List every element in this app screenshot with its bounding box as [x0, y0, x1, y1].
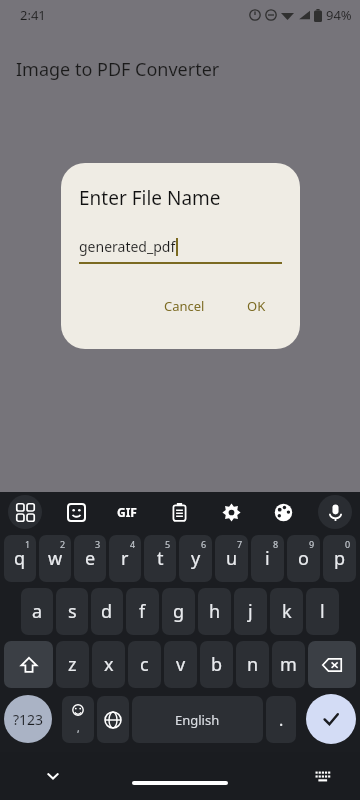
staticText: l — [320, 599, 325, 624]
button[interactable]: Emoji and comma — [62, 696, 94, 743]
staticText: generated_pdf — [79, 237, 176, 256]
staticText: e — [85, 546, 96, 571]
staticText: k — [282, 599, 292, 624]
button[interactable]: Clipboard — [162, 495, 196, 529]
staticText: b — [211, 652, 223, 677]
staticText: v — [176, 652, 186, 677]
staticText: ?123 — [13, 710, 44, 729]
staticText: d — [101, 599, 113, 624]
button[interactable]: p — [323, 535, 356, 582]
staticText: English — [175, 711, 220, 729]
button[interactable]: Cancel — [156, 291, 213, 321]
staticText: h — [209, 599, 221, 624]
staticText: j — [248, 599, 253, 624]
button[interactable]: English — [132, 696, 263, 743]
button[interactable]: Change language — [97, 696, 129, 743]
staticText: GIF — [117, 504, 137, 520]
button[interactable]: Shift — [4, 641, 53, 688]
button[interactable]: u — [215, 535, 248, 582]
staticText: 8 — [273, 538, 279, 550]
staticText: 94% — [326, 6, 352, 24]
staticText: 6 — [201, 538, 207, 550]
staticText: 5 — [165, 538, 171, 550]
staticText: t — [157, 546, 164, 571]
staticText: y — [191, 546, 201, 571]
button[interactable]: d — [91, 588, 123, 635]
button[interactable]: Hide keyboard — [38, 761, 68, 791]
staticText: , — [77, 721, 80, 735]
button[interactable]: Backspace — [308, 641, 356, 688]
button[interactable]: x — [92, 641, 125, 688]
staticText: Enter File Name — [79, 185, 221, 211]
button[interactable]: e — [74, 535, 106, 582]
button[interactable]: l — [306, 588, 339, 635]
staticText: i — [265, 546, 270, 571]
staticText: n — [247, 652, 259, 677]
button[interactable]: Stickers — [59, 495, 93, 529]
button[interactable]: b — [200, 641, 233, 688]
staticText: x — [104, 652, 114, 677]
staticText: p — [334, 546, 346, 571]
staticText: 1 — [25, 538, 31, 550]
button[interactable]: k — [270, 588, 303, 635]
button[interactable]: ?123 — [4, 695, 52, 743]
staticText: w — [48, 546, 63, 571]
staticText: Cancel — [164, 297, 205, 315]
staticText: u — [226, 546, 238, 571]
staticText: s — [68, 599, 77, 624]
button[interactable]: w — [39, 535, 71, 582]
button[interactable]: r — [109, 535, 141, 582]
button[interactable]: Period — [266, 696, 296, 743]
button[interactable]: c — [128, 641, 161, 688]
button[interactable]: i — [251, 535, 284, 582]
button[interactable]: a — [21, 588, 53, 635]
staticText: 2:41 — [20, 6, 46, 24]
staticText: 0 — [345, 538, 351, 550]
button[interactable]: j — [234, 588, 267, 635]
button[interactable]: m — [272, 641, 305, 688]
staticText: q — [14, 546, 26, 571]
button[interactable]: Settings — [214, 495, 248, 529]
staticText: o — [298, 546, 309, 571]
button[interactable]: GIF — [110, 495, 144, 529]
staticText: f — [139, 599, 146, 624]
button[interactable]: OK — [239, 291, 274, 321]
staticText: z — [68, 652, 77, 677]
staticText: 4 — [130, 538, 136, 550]
button[interactable]: App grid — [8, 495, 42, 529]
staticText: 2 — [60, 538, 66, 550]
button[interactable]: Themes — [266, 495, 300, 529]
button[interactable]: Switch keyboard — [308, 761, 338, 791]
staticText: 9 — [309, 538, 315, 550]
button[interactable]: z — [56, 641, 89, 688]
staticText: 3 — [95, 538, 101, 550]
staticText: m — [280, 652, 297, 677]
button[interactable]: t — [144, 535, 176, 582]
staticText: c — [140, 652, 149, 677]
button[interactable]: Done — [306, 694, 356, 744]
button[interactable]: g — [162, 588, 195, 635]
button[interactable]: f — [126, 588, 159, 635]
button[interactable]: v — [164, 641, 197, 688]
staticText: g — [173, 599, 185, 624]
button[interactable]: o — [287, 535, 320, 582]
staticText: Image to PDF Converter — [16, 57, 220, 82]
staticText: OK — [247, 297, 266, 315]
button[interactable]: n — [236, 641, 269, 688]
staticText: 7 — [237, 538, 243, 550]
button[interactable]: q — [4, 535, 36, 582]
staticText: . — [279, 709, 284, 731]
button[interactable]: s — [56, 588, 88, 635]
staticText: a — [32, 599, 43, 624]
button[interactable]: h — [198, 588, 231, 635]
button[interactable]: y — [179, 535, 212, 582]
button[interactable]: Voice input — [318, 495, 352, 529]
staticText: r — [121, 546, 129, 571]
